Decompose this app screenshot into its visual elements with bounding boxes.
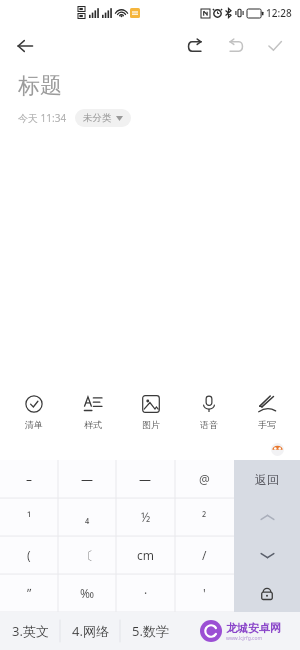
other: Page up [260, 513, 275, 522]
staticText: 手写 [258, 419, 276, 430]
staticText: 标题 [18, 72, 62, 100]
staticText: 12:28 [266, 6, 292, 20]
staticText: 龙城安卓网 [226, 621, 281, 635]
staticText: 样式 [84, 419, 102, 430]
button[interactable]: Back [8, 29, 42, 63]
staticText: 5.数学 [132, 622, 169, 640]
button[interactable]: 3.英文 [0, 612, 60, 650]
button[interactable]: 返回 [234, 460, 300, 498]
button[interactable]: ʺ [0, 574, 58, 612]
staticText: ² [202, 509, 207, 525]
button[interactable]: ² [175, 498, 234, 536]
staticText: 返回 [255, 472, 279, 487]
button[interactable]: 清单 [4, 386, 63, 438]
button[interactable]: 图片 [122, 386, 180, 438]
button[interactable]: Lock [234, 574, 300, 612]
button[interactable]: Page down [234, 536, 300, 574]
button[interactable]: 〔 [58, 536, 116, 574]
button[interactable]: 4.网络 [60, 612, 120, 650]
staticText: ½ [141, 509, 151, 525]
staticText: ― [139, 471, 152, 487]
staticText: 4.网络 [72, 622, 109, 640]
staticText: 图片 [142, 419, 160, 430]
staticText: — [81, 471, 94, 487]
button[interactable]: · [116, 574, 175, 612]
staticText: ₄ [85, 509, 90, 525]
staticText: ¹ [27, 509, 32, 525]
button[interactable]: 样式 [63, 386, 122, 438]
staticText: ( [27, 547, 31, 563]
button[interactable]: ½ [116, 498, 175, 536]
button[interactable]: Undo [178, 29, 212, 63]
button[interactable]: IME logo [271, 443, 284, 456]
button[interactable]: 5.数学 [120, 612, 180, 650]
button[interactable]: 未分类 [75, 109, 131, 127]
button[interactable]: ¹ [0, 498, 58, 536]
button[interactable]: 语音 [180, 386, 238, 438]
button[interactable]: ‰ [58, 574, 116, 612]
button[interactable]: — [58, 460, 116, 498]
staticText: ‰ [80, 585, 95, 601]
staticText: ' [203, 585, 206, 601]
button[interactable]: ' [175, 574, 234, 612]
staticText: www.lcjrfg.com [226, 635, 263, 642]
staticText: @ [199, 471, 210, 487]
staticText: · [144, 585, 148, 601]
button[interactable]: ― [116, 460, 175, 498]
button[interactable]: / [175, 536, 234, 574]
staticText: 今天 11:34 [18, 111, 67, 125]
other: Page down [260, 551, 275, 560]
staticText: ʺ [27, 585, 32, 601]
staticText: – [26, 471, 33, 487]
button[interactable]: – [0, 460, 58, 498]
button[interactable]: Page up [234, 498, 300, 536]
button[interactable]: cm [116, 536, 175, 574]
button[interactable]: Done [258, 29, 292, 63]
staticText: 清单 [25, 419, 43, 430]
staticText: 〔 [81, 548, 93, 563]
staticText: cm [137, 547, 154, 563]
button[interactable]: 手写 [238, 386, 296, 438]
other: Lock [261, 587, 273, 600]
staticText: 语音 [200, 419, 218, 430]
button[interactable]: Redo [218, 29, 252, 63]
staticText: 未分类 [83, 112, 112, 124]
button[interactable]: ₄ [58, 498, 116, 536]
staticText: / [202, 547, 207, 563]
button[interactable]: @ [175, 460, 234, 498]
button[interactable]: ( [0, 536, 58, 574]
staticText: 3.英文 [12, 622, 49, 640]
